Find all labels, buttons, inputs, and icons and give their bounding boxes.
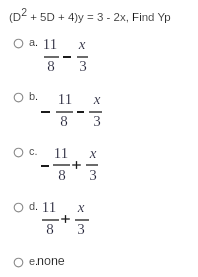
staticText: 8 — [49, 113, 79, 130]
staticText: 3 — [82, 113, 112, 130]
staticText: c. — [29, 145, 38, 157]
staticText: e. — [29, 255, 39, 267]
staticText: 11 — [34, 199, 64, 216]
staticText: 11 — [50, 91, 80, 108]
button[interactable] — [0, 22, 198, 68]
staticText: b. — [29, 90, 39, 102]
staticText: (D2 + 5D + 4)y = 3 - 2x, Find Yp — [9, 6, 171, 23]
staticText: x — [67, 36, 97, 53]
staticText: 11 — [46, 145, 76, 162]
button[interactable] — [0, 131, 198, 177]
staticText: a. — [29, 36, 39, 48]
button[interactable] — [0, 186, 198, 232]
staticText: 8 — [35, 221, 65, 238]
staticText: 3 — [66, 221, 96, 238]
staticText: 8 — [36, 58, 66, 75]
button[interactable] — [0, 241, 198, 277]
staticText: 8 — [47, 167, 77, 184]
staticText: none — [37, 254, 65, 268]
staticText: 11 — [35, 36, 65, 53]
staticText: 3 — [78, 167, 108, 184]
staticText: x — [82, 91, 112, 108]
staticText: 3 — [68, 58, 98, 75]
staticText: d. — [29, 200, 39, 212]
staticText: x — [78, 145, 108, 162]
staticText: x — [66, 199, 96, 216]
button[interactable] — [0, 76, 198, 122]
